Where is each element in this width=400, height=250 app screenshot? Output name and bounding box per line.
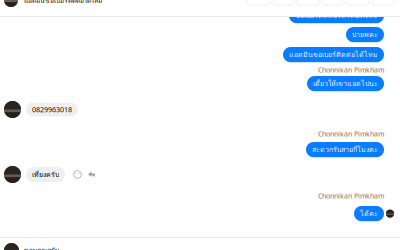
staticText: บ่ายพคะ (352, 29, 378, 40)
staticText: แอดมินขอเบอร์ติดต่อได้ไหม (289, 49, 378, 60)
button[interactable]: React to message (73, 170, 82, 179)
button[interactable]: Reply (88, 171, 95, 177)
staticText: เที่ยงครับ (32, 169, 59, 180)
button[interactable]: ขอเบอร์ติดต่อได้ไหมคะค่ะ (289, 8, 384, 23)
staticText: ขอเบอร์ติดต่อได้ไหมคะค่ะ (295, 10, 378, 21)
button[interactable]: เที่ยงครับ (26, 167, 65, 182)
staticText: Chonnikan Pimkham (318, 65, 384, 74)
staticText: Chonnikan Pimkham (318, 129, 384, 138)
staticText: 0829963018 (32, 105, 72, 114)
staticText: ขอบคุณครับ (24, 245, 59, 250)
button[interactable]: บ่ายพคะ (346, 27, 384, 42)
staticText: สะดวกรับสายกี่โมงคะ (312, 144, 378, 155)
staticText: ได้คะ (360, 208, 378, 219)
button[interactable]: 0829963018 (26, 103, 78, 116)
button[interactable]: แอดมินขอเบอร์ติดต่อได้ไหม (283, 47, 384, 62)
staticText: เดี๋ยวให้เขาแอดไปนะ (313, 78, 378, 89)
button[interactable]: ได้คะ (354, 206, 384, 221)
button[interactable]: สะดวกรับสายกี่โมงคะ (306, 142, 384, 157)
staticText: แอดมินขอเบอร์ติดต่อได้ไหม (24, 0, 102, 6)
button[interactable]: เดี๋ยวให้เขาแอดไปนะ (307, 76, 384, 91)
staticText: Chonnikan Pimkham (318, 191, 384, 200)
